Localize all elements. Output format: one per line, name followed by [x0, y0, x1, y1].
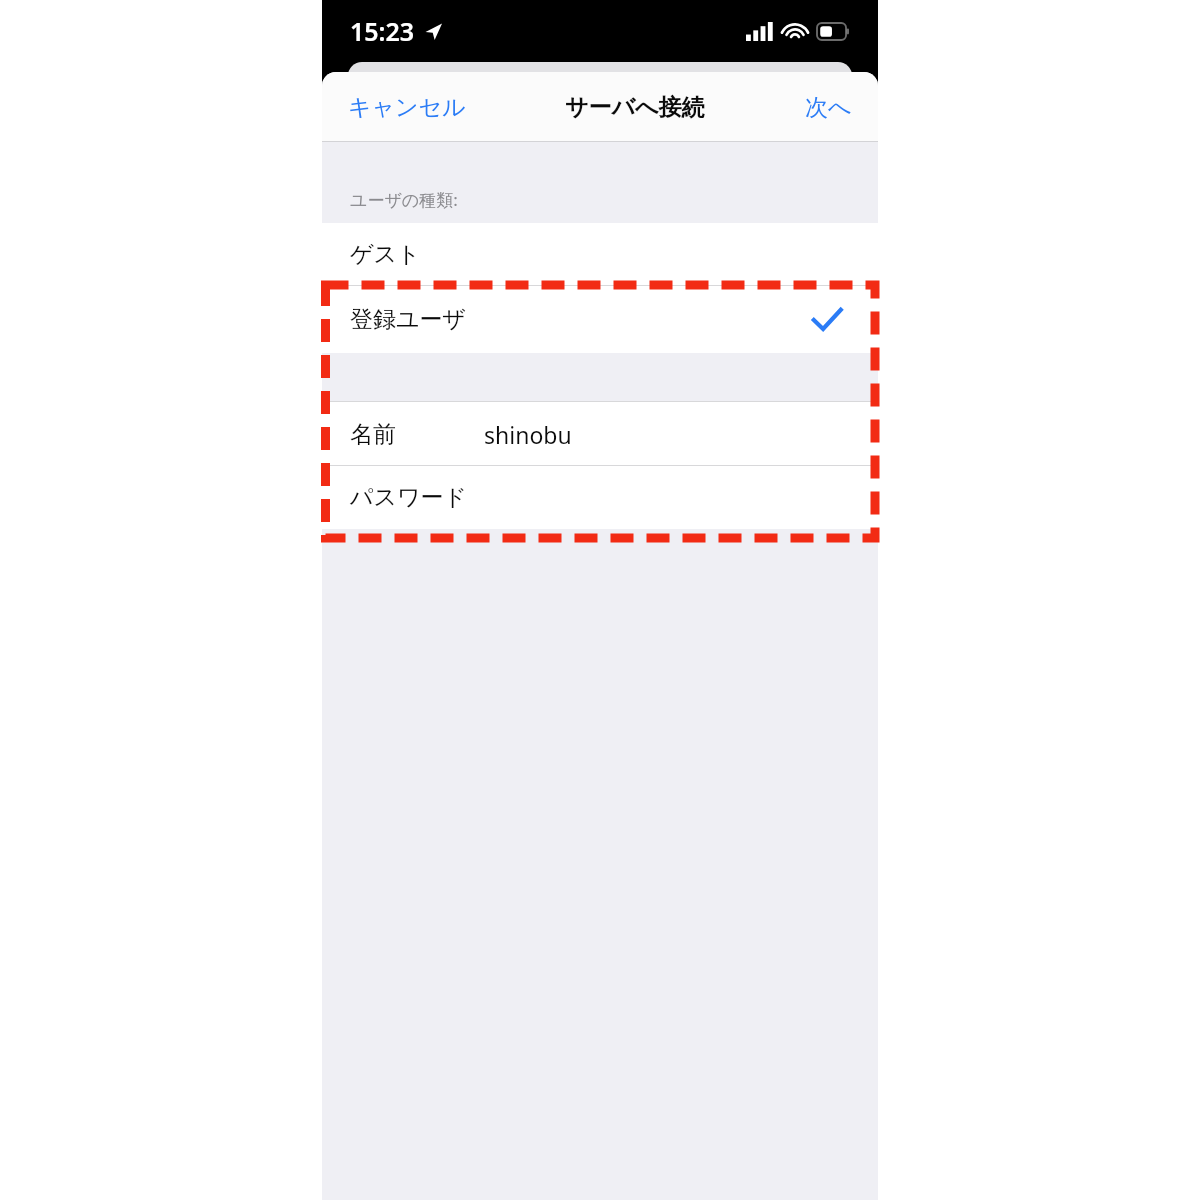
- staticText: 15:23: [350, 14, 415, 48]
- staticText: shinobu: [484, 419, 572, 450]
- staticText: 次へ: [805, 93, 852, 122]
- staticText: キャンセル: [348, 93, 466, 122]
- staticText: ユーザの種類:: [350, 188, 458, 211]
- staticText: サーバへ接続: [565, 93, 705, 122]
- button[interactable]: ゲスト: [322, 223, 878, 286]
- staticText: パスワード: [350, 483, 468, 512]
- button[interactable]: パスワード: [322, 466, 878, 529]
- staticText: 名前: [350, 420, 396, 449]
- button[interactable]: キャンセル: [322, 83, 476, 132]
- button[interactable]: 名前: [322, 402, 878, 466]
- button[interactable]: 次へ: [795, 83, 878, 132]
- button[interactable]: 登録ユーザ: [322, 286, 878, 353]
- staticText: ゲスト: [350, 240, 421, 269]
- staticText: 登録ユーザ: [350, 305, 467, 334]
